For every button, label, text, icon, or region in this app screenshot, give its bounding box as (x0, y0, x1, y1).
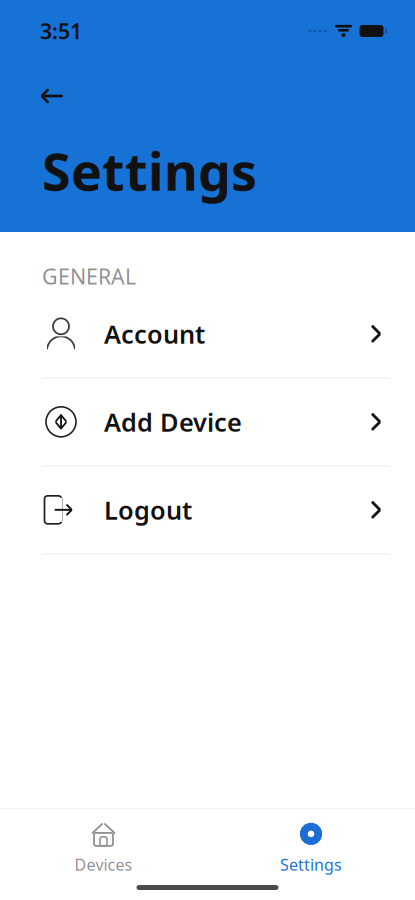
button[interactable]: Devices (0, 819, 207, 877)
button[interactable]: Logout (0, 466, 415, 553)
staticText: Add Device (104, 405, 242, 439)
button[interactable]: Add Device (0, 378, 415, 465)
button[interactable]: Settings (207, 819, 415, 877)
staticText: Devices (74, 854, 132, 875)
staticText: Account (104, 317, 205, 351)
staticText: Logout (104, 493, 192, 527)
staticText: Settings (280, 854, 342, 875)
staticText: Settings (42, 136, 257, 205)
button[interactable]: Back (30, 74, 74, 118)
staticText: GENERAL (42, 262, 136, 290)
staticText: 3:51 (40, 17, 82, 45)
button[interactable]: Account (0, 290, 415, 377)
